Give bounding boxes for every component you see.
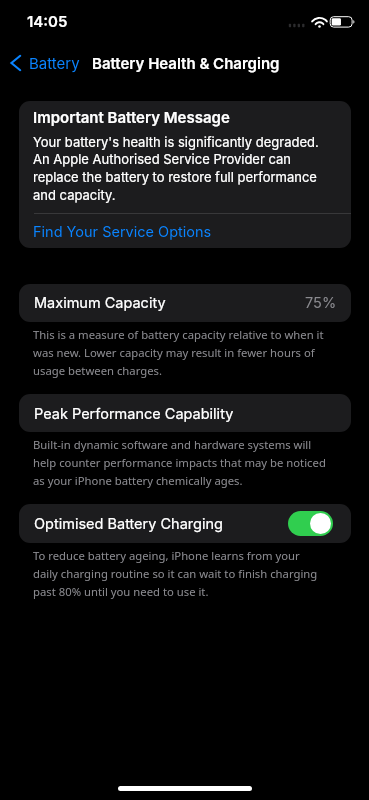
staticText: 14:05 — [27, 12, 68, 30]
staticText: 75% — [305, 294, 337, 312]
staticText: To reduce battery ageing, iPhone learns … — [33, 548, 327, 599]
button[interactable]: Find Your Service Options — [19, 213, 351, 248]
staticText: Your battery's health is significantly d… — [33, 134, 326, 203]
button[interactable]: Maximum Capacity — [19, 284, 351, 322]
button[interactable]: Back to Battery — [4, 50, 88, 76]
staticText: Important Battery Message — [33, 108, 230, 126]
staticText: Peak Performance Capability — [34, 405, 234, 423]
staticText: Battery Health & Charging — [92, 54, 280, 72]
staticText: Battery — [29, 54, 80, 72]
staticText: Optimised Battery Charging — [34, 515, 223, 533]
button[interactable]: Optimised Battery Charging toggle — [288, 511, 333, 536]
staticText: This is a measure of battery capacity re… — [33, 327, 327, 378]
button[interactable]: Peak Performance Capability — [19, 394, 351, 432]
staticText: Maximum Capacity — [34, 294, 166, 312]
staticText: Find Your Service Options — [33, 223, 212, 241]
staticText: Built-in dynamic software and hardware s… — [33, 437, 327, 488]
